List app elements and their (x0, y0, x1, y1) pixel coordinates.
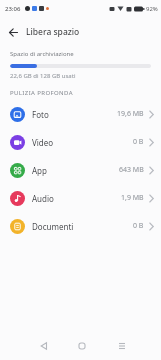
button[interactable]: Audio (0, 184, 161, 212)
staticText: 643 MB (119, 165, 144, 175)
button[interactable]: Video (0, 128, 161, 156)
staticText: 0 B (133, 137, 144, 147)
staticText: 22,6 GB di 128 GB usati (10, 72, 76, 80)
button[interactable] (9, 28, 18, 37)
button[interactable]: Foto (0, 100, 161, 128)
button[interactable]: App (0, 156, 161, 184)
staticText: App (32, 165, 47, 176)
staticText: Foto (32, 109, 49, 120)
staticText: 1,9 MB (121, 193, 144, 203)
staticText: 19,6 MB (117, 109, 144, 119)
staticText: Libera spazio (26, 26, 80, 38)
staticText: 23:06 (5, 5, 21, 13)
button[interactable] (78, 342, 86, 350)
button[interactable]: Documenti (0, 212, 161, 240)
staticText: Audio (32, 193, 54, 204)
staticText: 92% (146, 5, 158, 13)
button[interactable] (40, 342, 48, 350)
staticText: 0 B (133, 221, 144, 231)
button[interactable] (118, 342, 126, 350)
staticText: PULIZIA PROFONDA (10, 89, 73, 97)
staticText: Documenti (32, 221, 74, 232)
staticText: Video (32, 137, 54, 148)
staticText: Spazio di archiviazione (10, 50, 74, 58)
